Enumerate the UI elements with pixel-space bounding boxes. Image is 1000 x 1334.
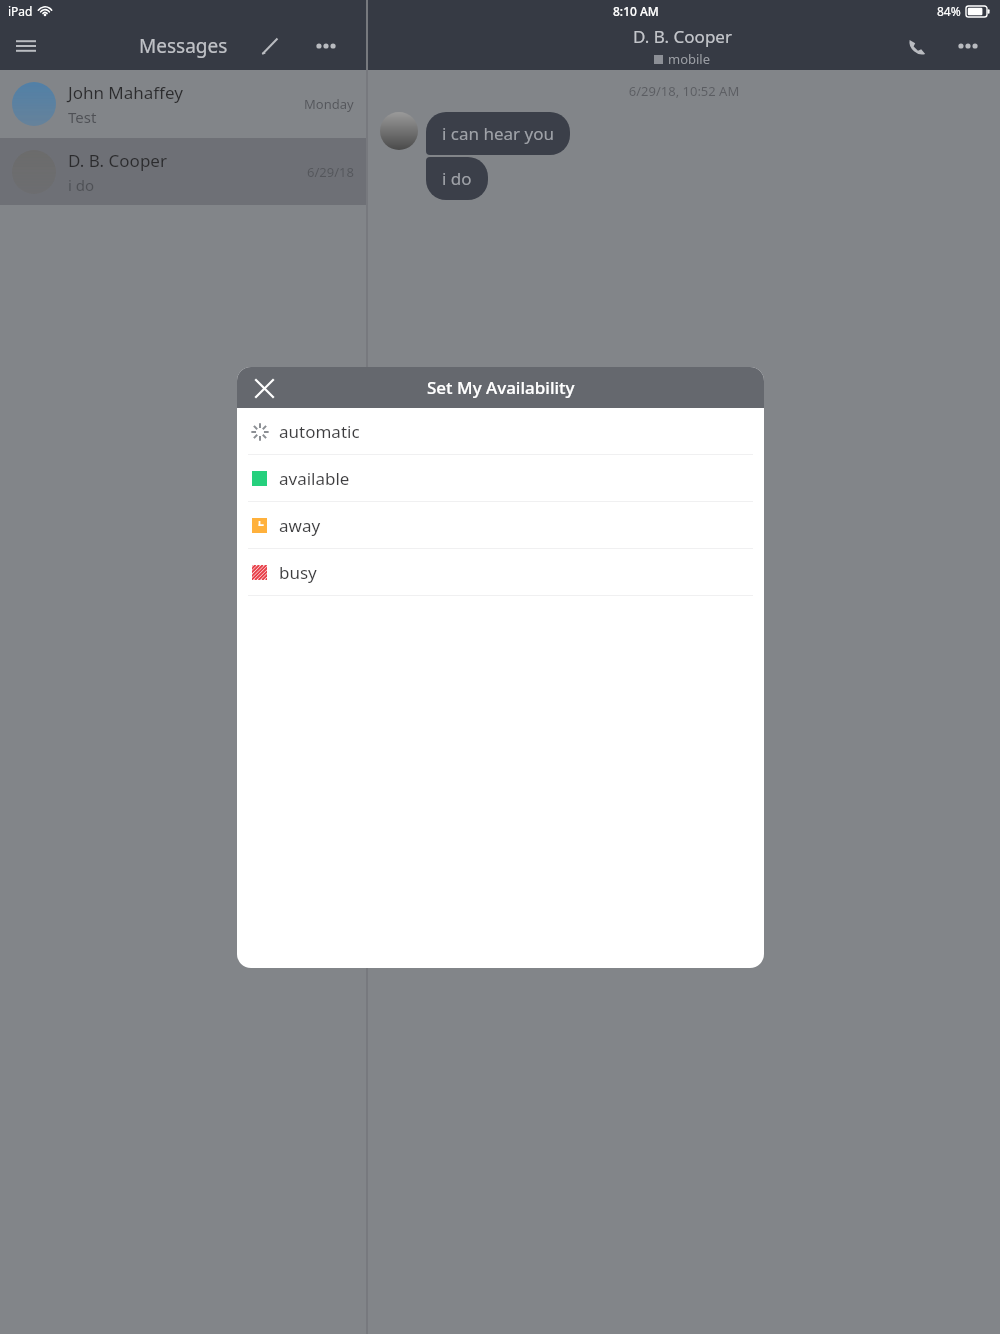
staticText: Set My Availability [427, 376, 575, 399]
staticText: automatic [279, 420, 360, 443]
button[interactable]: More options [306, 26, 346, 66]
button[interactable]: John Mahaffey [0, 70, 366, 138]
staticText: i do [68, 175, 95, 195]
staticText: busy [279, 561, 317, 584]
button[interactable]: Compose [250, 26, 290, 66]
button[interactable]: busy [237, 549, 764, 595]
staticText: Messages [139, 33, 228, 59]
staticText: away [279, 514, 321, 537]
staticText: D. B. Cooper [633, 25, 732, 48]
staticText: 84% [937, 3, 961, 19]
staticText: available [279, 467, 350, 490]
button[interactable]: More options [948, 26, 988, 66]
staticText: 6/29/18 [307, 163, 354, 181]
staticText: i can hear you [442, 122, 554, 145]
button[interactable]: i do [426, 157, 488, 200]
staticText: mobile [668, 50, 711, 68]
button[interactable]: D. B. Cooper [0, 138, 366, 205]
button[interactable]: Close [247, 371, 281, 405]
button[interactable]: automatic [237, 408, 764, 454]
staticText: iPad [8, 3, 33, 19]
staticText: 6/29/18, 10:52 AM [368, 82, 1000, 100]
button[interactable]: Menu [8, 28, 44, 64]
staticText: Monday [304, 95, 354, 113]
staticText: i do [442, 167, 472, 190]
staticText: John Mahaffey [68, 81, 183, 104]
button[interactable]: i can hear you [426, 112, 570, 155]
staticText: Test [68, 107, 97, 127]
staticText: 8:10 AM [613, 3, 659, 19]
staticText: D. B. Cooper [68, 149, 167, 172]
button[interactable]: Call [898, 26, 938, 66]
button[interactable]: away [237, 502, 764, 548]
button[interactable]: available [237, 455, 764, 501]
